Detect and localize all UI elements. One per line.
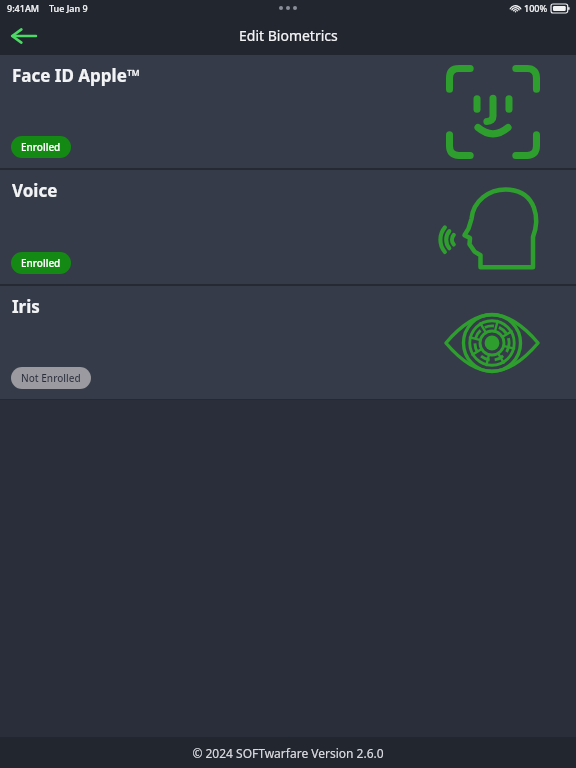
staticText: Iris — [12, 295, 40, 318]
button[interactable]: Voice — [0, 170, 576, 284]
staticText: © 2024 SOFTwarfare Version 2.6.0 — [192, 745, 384, 761]
button[interactable]: Face ID Apple™ — [0, 55, 576, 168]
staticText: Voice — [12, 179, 58, 202]
button[interactable]: Enrolled — [11, 252, 71, 274]
staticText: 100% — [524, 2, 548, 14]
staticText: Enrolled — [21, 140, 61, 154]
button[interactable]: Enrolled — [11, 136, 71, 158]
staticText: Face ID Apple™ — [12, 64, 140, 87]
staticText: Not Enrolled — [21, 371, 81, 385]
button[interactable]: Iris — [0, 286, 576, 399]
staticText: Tue Jan 9 — [49, 2, 88, 14]
button[interactable]: Not Enrolled — [11, 367, 91, 389]
staticText: 9:41AM — [7, 2, 40, 14]
button[interactable]: Back — [4, 16, 44, 55]
staticText: Enrolled — [21, 256, 61, 270]
staticText: Edit Biometrics — [239, 26, 338, 45]
